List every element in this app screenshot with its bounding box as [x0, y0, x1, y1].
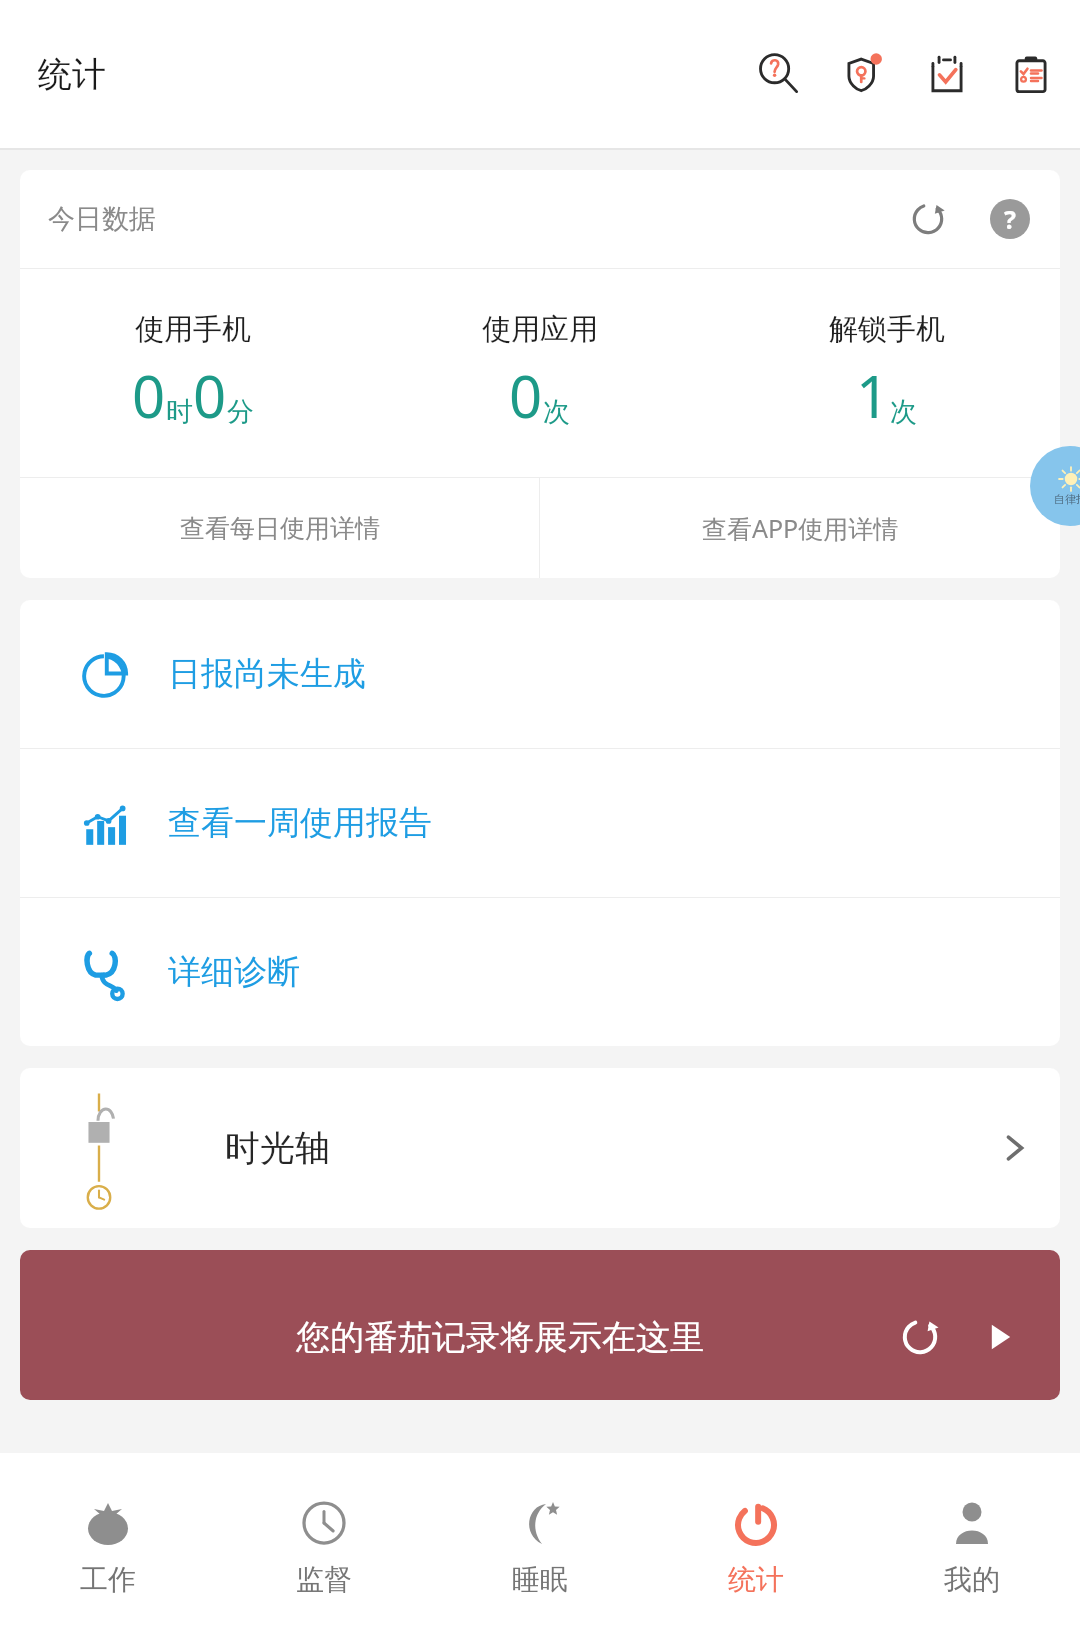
- button[interactable]: 自律打卡: [1030, 446, 1080, 526]
- button[interactable]: 查看每日使用详情: [20, 478, 539, 578]
- staticText: 查看一周使用报告: [168, 802, 432, 844]
- staticText: 次: [543, 395, 570, 429]
- button[interactable]: 查看一周使用报告: [20, 749, 1060, 897]
- staticText: 今日数据: [48, 202, 156, 236]
- staticText: 使用手机: [135, 311, 251, 348]
- button[interactable]: 开始: [972, 1309, 1028, 1365]
- staticText: 使用应用: [482, 311, 598, 348]
- staticText: 监督: [296, 1562, 352, 1597]
- staticText: 睡眠: [512, 1562, 568, 1597]
- button[interactable]: 我的: [864, 1453, 1080, 1639]
- button[interactable]: 清单: [1000, 43, 1062, 105]
- staticText: 0: [509, 356, 543, 435]
- button[interactable]: 监督: [216, 1453, 432, 1639]
- staticText: 统计: [38, 53, 106, 96]
- button[interactable]: 您的番茄记录将展示在这里: [20, 1250, 1060, 1400]
- staticText: 解锁手机: [829, 311, 945, 348]
- button[interactable]: 日报尚未生成: [20, 600, 1060, 748]
- staticText: 自律打: [1054, 492, 1080, 506]
- button[interactable]: 睡眠: [432, 1453, 648, 1639]
- staticText: 统计: [728, 1562, 784, 1597]
- staticText: 详细诊断: [168, 951, 300, 993]
- staticText: 分: [227, 395, 254, 429]
- button[interactable]: 安全: [832, 43, 894, 105]
- staticText: 我的: [944, 1562, 1000, 1597]
- staticText: 次: [890, 395, 917, 429]
- staticText: ?: [1004, 202, 1016, 236]
- staticText: 时: [166, 395, 193, 429]
- button[interactable]: 刷新番茄: [892, 1309, 948, 1365]
- staticText: 时光轴: [225, 1126, 330, 1170]
- button[interactable]: 时光轴: [20, 1068, 1060, 1228]
- staticText: 查看APP使用详情: [702, 511, 899, 545]
- staticText: 工作: [80, 1562, 136, 1597]
- button[interactable]: 统计: [648, 1453, 864, 1639]
- staticText: 查看每日使用详情: [180, 513, 380, 544]
- button[interactable]: 打卡: [916, 43, 978, 105]
- staticText: 日报尚未生成: [168, 653, 366, 695]
- button[interactable]: 搜索: [748, 43, 810, 105]
- button[interactable]: 查看APP使用详情: [540, 478, 1060, 578]
- staticText: 0: [132, 356, 166, 435]
- button[interactable]: 刷新: [900, 191, 956, 247]
- button[interactable]: 工作: [0, 1453, 216, 1639]
- button[interactable]: 帮助: [982, 191, 1038, 247]
- button[interactable]: 详细诊断: [20, 898, 1060, 1046]
- staticText: 1: [856, 356, 890, 435]
- staticText: 您的番茄记录将展示在这里: [296, 1316, 704, 1359]
- staticText: 0: [193, 356, 227, 435]
